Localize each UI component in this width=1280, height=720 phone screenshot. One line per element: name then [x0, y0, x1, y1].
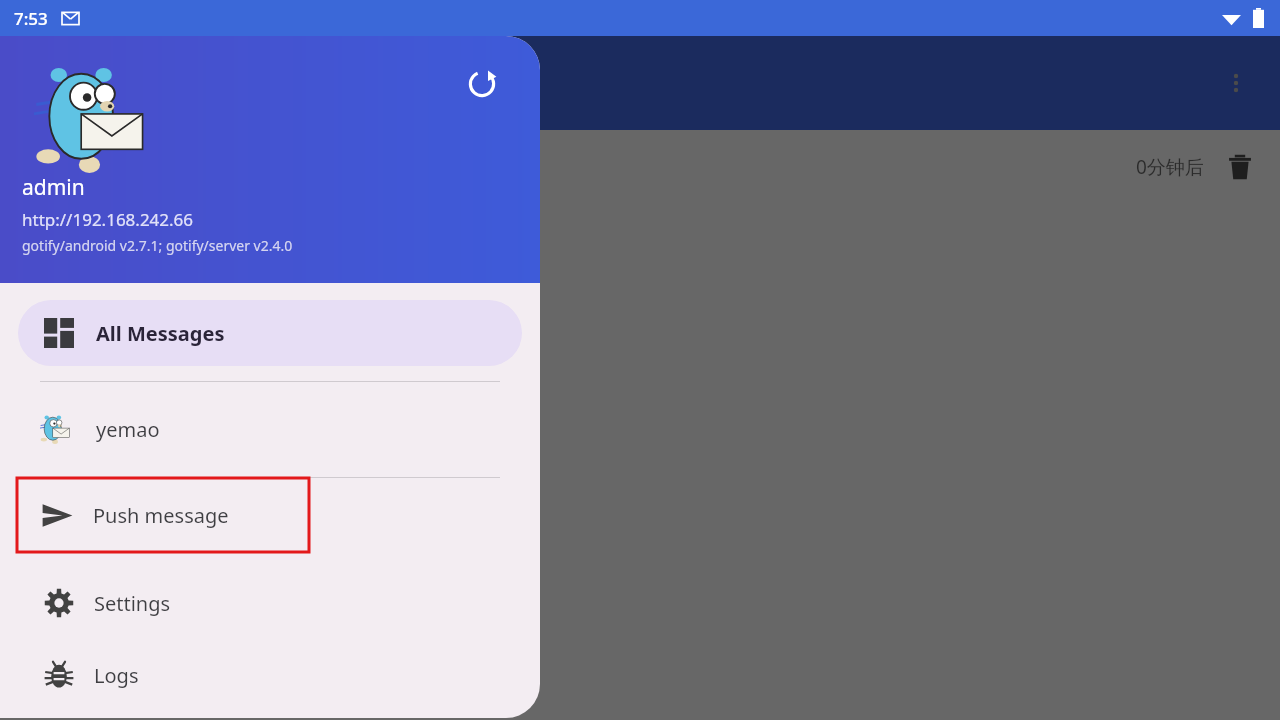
button[interactable]: Push message: [17, 478, 309, 552]
staticText: http://192.168.242.66: [22, 208, 194, 231]
button[interactable]: Logs: [0, 639, 540, 711]
button[interactable]: All Messages: [18, 300, 522, 366]
button[interactable]: Refresh: [460, 62, 504, 106]
button[interactable]: yemao: [0, 382, 540, 477]
staticText: yemao: [96, 416, 160, 443]
staticText: 0分钟后: [1136, 154, 1204, 180]
staticText: Settings: [94, 590, 171, 617]
staticText: Logs: [94, 662, 139, 689]
staticText: 7:53: [14, 7, 48, 30]
staticText: Push message: [93, 502, 229, 529]
staticText: All Messages: [96, 320, 225, 347]
button[interactable]: Settings: [0, 567, 540, 639]
staticText: gotify/android v2.7.1; gotify/server v2.…: [22, 236, 293, 255]
staticText: admin: [22, 173, 85, 202]
button[interactable]: Delete: [1224, 151, 1256, 183]
button[interactable]: More options: [1212, 59, 1260, 107]
